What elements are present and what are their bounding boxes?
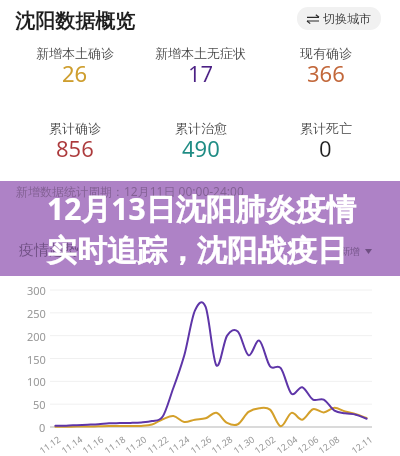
staticText: 11.30 [231, 432, 257, 456]
staticText: 新增本土确诊 [36, 45, 114, 61]
staticText: 累计确诊 [49, 120, 101, 136]
staticText: 切换城市 [323, 11, 371, 26]
staticText: 新增本土无症状 [155, 45, 246, 61]
button[interactable]: 累计治愈 [138, 120, 263, 166]
staticText: 12.06 [295, 432, 321, 456]
staticText: 12.04 [274, 432, 300, 456]
staticText: 490 [182, 133, 220, 163]
staticText: 11.24 [166, 432, 192, 456]
staticText: 856 [56, 133, 94, 163]
staticText: 累计治愈 [175, 120, 227, 136]
staticText: 11.16 [80, 432, 106, 456]
staticText: 11.18 [102, 432, 128, 456]
staticText: 12.08 [316, 432, 342, 456]
staticText: 150 [27, 352, 46, 367]
button[interactable]: 现有确诊 [263, 45, 388, 91]
button[interactable]: 累计死亡 [263, 120, 388, 166]
staticText: 现有确诊 [300, 45, 352, 61]
staticText: 12月13日沈阳肺炎疫情 [47, 188, 356, 229]
staticText: 300 [27, 283, 46, 298]
staticText: 250 [27, 306, 46, 321]
staticText: 0 [39, 420, 46, 435]
staticText: 12.11 [349, 432, 375, 456]
button[interactable]: 新增 [340, 245, 372, 258]
button[interactable]: 切换城市 [297, 7, 381, 30]
staticText: 11.28 [209, 432, 235, 456]
staticText: 沈阳数据概览 [15, 9, 135, 34]
staticText: 实时追踪，沈阳战疫日 [47, 232, 347, 270]
button[interactable]: 新增本土无症状 [138, 45, 263, 91]
staticText: 11.14 [59, 432, 85, 456]
staticText: 200 [27, 329, 46, 344]
staticText: 11.12 [37, 432, 63, 456]
staticText: 26 [62, 58, 88, 88]
staticText: 366 [307, 58, 345, 88]
staticText: 100 [27, 374, 46, 389]
staticText: 累计死亡 [300, 120, 352, 136]
staticText: 疫情趋势 [19, 241, 79, 260]
staticText: 11.22 [145, 432, 171, 456]
staticText: 12.02 [252, 432, 278, 456]
staticText: 11.26 [188, 432, 214, 456]
staticText: 新增 [340, 245, 360, 258]
staticText: 50 [33, 397, 46, 412]
staticText: 0 [319, 133, 332, 163]
staticText: 17 [188, 58, 214, 88]
button[interactable]: 累计确诊 [12, 120, 138, 166]
button[interactable]: 新增本土确诊 [12, 45, 138, 91]
staticText: 11.20 [123, 432, 149, 456]
staticText: 新增数据统计周期：12月11日 00:00-24:00 [16, 183, 244, 199]
